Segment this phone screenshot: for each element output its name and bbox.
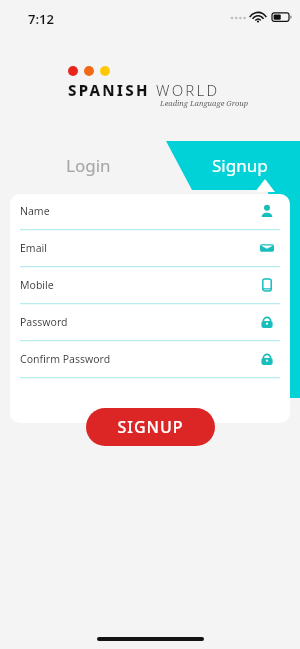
staticText: Confirm Password [20, 352, 111, 366]
staticText: WORLD [150, 80, 220, 100]
staticText: 7:12 [28, 10, 54, 28]
staticText: Email [20, 241, 47, 255]
button[interactable]: Email [10, 231, 290, 268]
button[interactable]: SIGNUP [86, 408, 215, 446]
staticText: Signup [212, 154, 268, 177]
button[interactable]: Password [10, 305, 290, 342]
staticText: Leading Language Group [160, 98, 249, 108]
button[interactable]: Confirm Password [10, 342, 290, 379]
button[interactable]: Mobile [10, 268, 290, 305]
staticText: Login [66, 154, 111, 177]
staticText: SPANISH [68, 80, 150, 100]
staticText: Name [20, 204, 50, 218]
staticText: SIGNUP [117, 416, 184, 438]
staticText: Mobile [20, 278, 54, 292]
staticText: Password [20, 315, 68, 329]
button[interactable]: Login [10, 141, 166, 190]
button[interactable]: Signup [180, 141, 300, 190]
button[interactable]: Name [10, 194, 290, 231]
